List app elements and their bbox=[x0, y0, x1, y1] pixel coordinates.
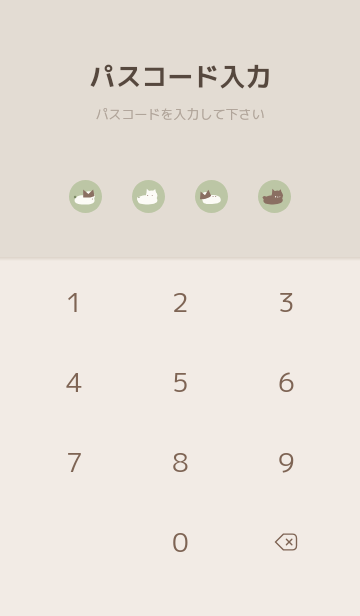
button[interactable]: 5 bbox=[127, 342, 233, 422]
staticText: 0 bbox=[172, 523, 189, 561]
staticText: 7 bbox=[66, 443, 83, 481]
staticText: パスコード入力 bbox=[89, 58, 272, 94]
button[interactable]: 9 bbox=[233, 422, 339, 502]
staticText: 1 bbox=[66, 283, 83, 321]
staticText: 4 bbox=[66, 363, 83, 401]
button[interactable]: 8 bbox=[127, 422, 233, 502]
staticText: 6 bbox=[278, 363, 295, 401]
button[interactable]: Delete bbox=[233, 502, 339, 582]
staticText: 2 bbox=[172, 283, 189, 321]
button[interactable]: 1 bbox=[21, 262, 127, 342]
button[interactable]: 6 bbox=[233, 342, 339, 422]
staticText: 5 bbox=[172, 363, 189, 401]
button[interactable]: 0 bbox=[127, 502, 233, 582]
button[interactable]: 4 bbox=[21, 342, 127, 422]
button[interactable]: 3 bbox=[233, 262, 339, 342]
staticText: 8 bbox=[172, 443, 189, 481]
staticText: 9 bbox=[278, 443, 295, 481]
staticText: パスコードを入力して下さい bbox=[95, 105, 265, 123]
button[interactable]: 2 bbox=[127, 262, 233, 342]
staticText: 3 bbox=[278, 283, 295, 321]
button[interactable]: 7 bbox=[21, 422, 127, 502]
